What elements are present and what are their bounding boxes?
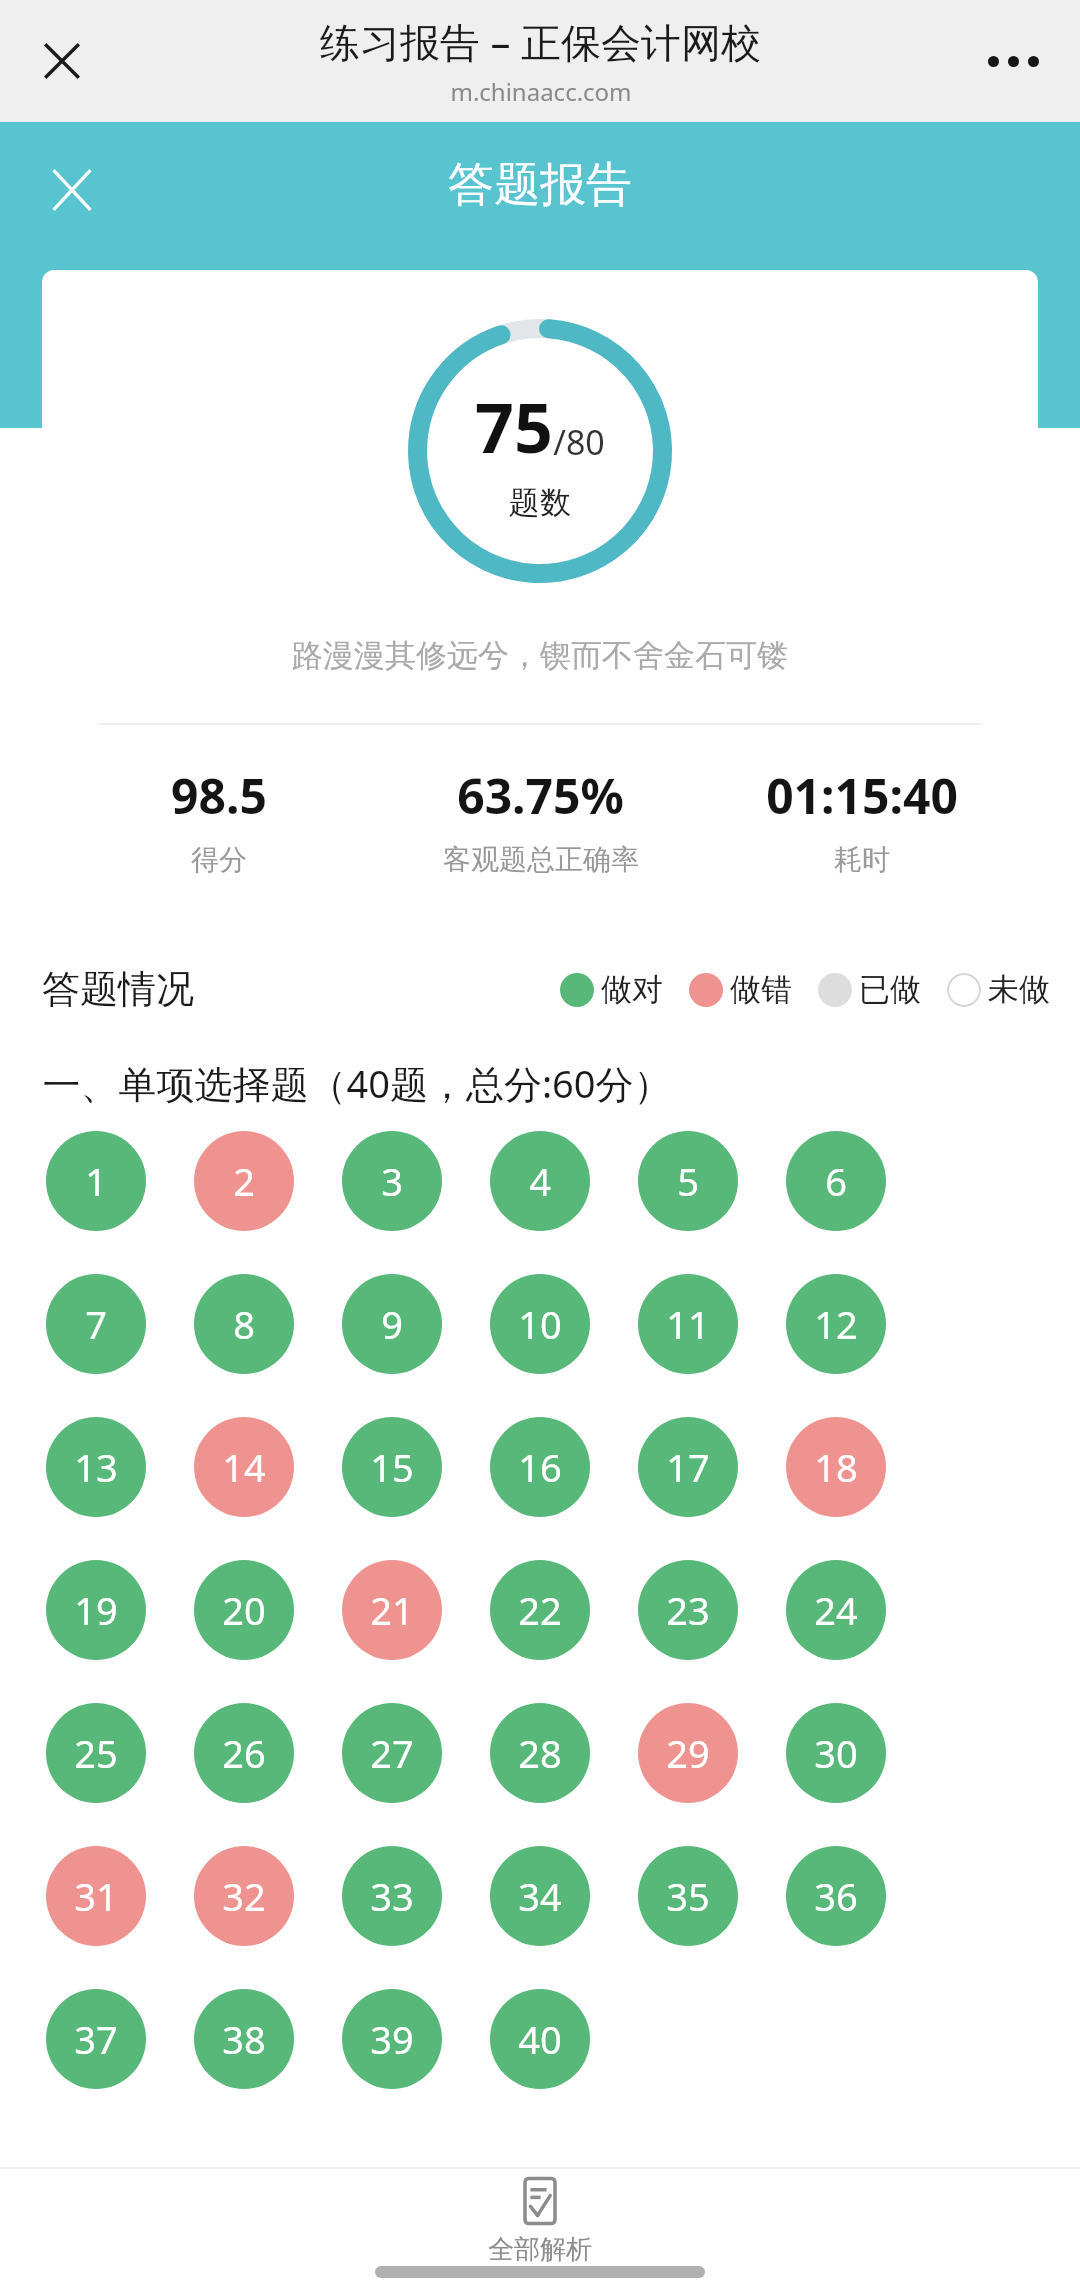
staticText: 40 [518,2013,562,2065]
staticText: 01:15:40 [766,763,958,828]
staticText: 98.5 [171,763,267,828]
button[interactable]: 12 [786,1274,886,1374]
button[interactable]: 18 [786,1417,886,1517]
staticText: 13 [74,1441,118,1493]
staticText: /80 [553,419,605,465]
other: All analysis [515,2177,565,2227]
staticText: 6 [825,1155,847,1207]
button[interactable]: 37 [46,1989,146,2089]
staticText: 39 [370,2013,414,2065]
staticText: 32 [222,1870,266,1922]
button[interactable]: 2 [194,1131,294,1231]
button[interactable]: 15 [342,1417,442,1517]
staticText: 24 [814,1584,858,1636]
staticText: 练习报告 – 正保会计网校 [320,14,761,69]
staticText: 26 [222,1727,266,1779]
button[interactable]: 13 [46,1417,146,1517]
staticText: 路漫漫其修远兮，锲而不舍金石可镂 [292,636,788,675]
staticText: 耗时 [834,842,890,877]
button[interactable]: 6 [786,1131,886,1231]
staticText: 答题报告 [448,156,632,214]
button[interactable]: 29 [638,1703,738,1803]
staticText: 35 [666,1870,710,1922]
staticText: 全部解析 [488,2233,592,2266]
staticText: 36 [814,1870,858,1922]
staticText: 已做 [859,970,921,1009]
button[interactable]: 34 [490,1846,590,1946]
staticText: 8 [233,1298,255,1350]
staticText: 38 [222,2013,266,2065]
staticText: 10 [518,1298,562,1350]
staticText: 63.75% [457,763,624,828]
button[interactable]: 32 [194,1846,294,1946]
staticText: 19 [74,1584,118,1636]
button[interactable]: 7 [46,1274,146,1374]
button[interactable]: All analysis [0,2169,1080,2266]
button[interactable]: Close report [24,142,120,238]
staticText: 客观题总正确率 [443,842,639,877]
staticText: m.chinaacc.com [450,75,632,108]
staticText: 3 [381,1155,403,1207]
button[interactable]: 11 [638,1274,738,1374]
staticText: 29 [666,1727,710,1779]
button[interactable]: 35 [638,1846,738,1946]
staticText: 30 [814,1727,858,1779]
button[interactable]: 40 [490,1989,590,2089]
button[interactable]: 8 [194,1274,294,1374]
staticText: 21 [370,1584,414,1636]
staticText: 1 [85,1155,107,1207]
button[interactable]: 14 [194,1417,294,1517]
button[interactable]: 1 [46,1131,146,1231]
button[interactable]: 19 [46,1560,146,1660]
button[interactable]: 28 [490,1703,590,1803]
button[interactable]: 25 [46,1703,146,1803]
staticText: 16 [518,1441,562,1493]
button[interactable]: 10 [490,1274,590,1374]
button[interactable]: 38 [194,1989,294,2089]
button[interactable]: Close [20,19,104,103]
staticText: 4 [529,1155,551,1207]
staticText: 75 [475,380,553,473]
staticText: 25 [74,1727,118,1779]
button[interactable]: 27 [342,1703,442,1803]
staticText: 17 [666,1441,710,1493]
staticText: 33 [370,1870,414,1922]
staticText: 5 [677,1155,699,1207]
button[interactable]: 23 [638,1560,738,1660]
button[interactable]: 24 [786,1560,886,1660]
staticText: 未做 [988,970,1050,1009]
button[interactable]: 5 [638,1131,738,1231]
button[interactable]: 26 [194,1703,294,1803]
button[interactable]: 22 [490,1560,590,1660]
button[interactable]: 4 [490,1131,590,1231]
button[interactable]: 9 [342,1274,442,1374]
button[interactable]: 30 [786,1703,886,1803]
staticText: 20 [222,1584,266,1636]
staticText: 9 [381,1298,403,1350]
staticText: 11 [666,1298,710,1350]
staticText: 22 [518,1584,562,1636]
button[interactable]: More options [968,16,1058,106]
staticText: 2 [233,1155,255,1207]
staticText: 一、单项选择题（40题，总分:60分） [42,1057,672,1109]
staticText: 14 [222,1441,266,1493]
button[interactable]: 31 [46,1846,146,1946]
staticText: 37 [74,2013,118,2065]
button[interactable]: 3 [342,1131,442,1231]
staticText: 答题情况 [42,965,194,1013]
staticText: 做对 [601,970,663,1009]
staticText: 得分 [191,842,247,877]
staticText: 15 [370,1441,414,1493]
button[interactable]: 20 [194,1560,294,1660]
button[interactable]: 36 [786,1846,886,1946]
button[interactable]: 33 [342,1846,442,1946]
button[interactable]: 21 [342,1560,442,1660]
staticText: 27 [370,1727,414,1779]
button[interactable]: 17 [638,1417,738,1517]
staticText: 做错 [730,970,792,1009]
button[interactable]: 16 [490,1417,590,1517]
button[interactable]: 39 [342,1989,442,2089]
staticText: 28 [518,1727,562,1779]
staticText: 7 [85,1298,107,1350]
staticText: 题数 [509,483,571,522]
